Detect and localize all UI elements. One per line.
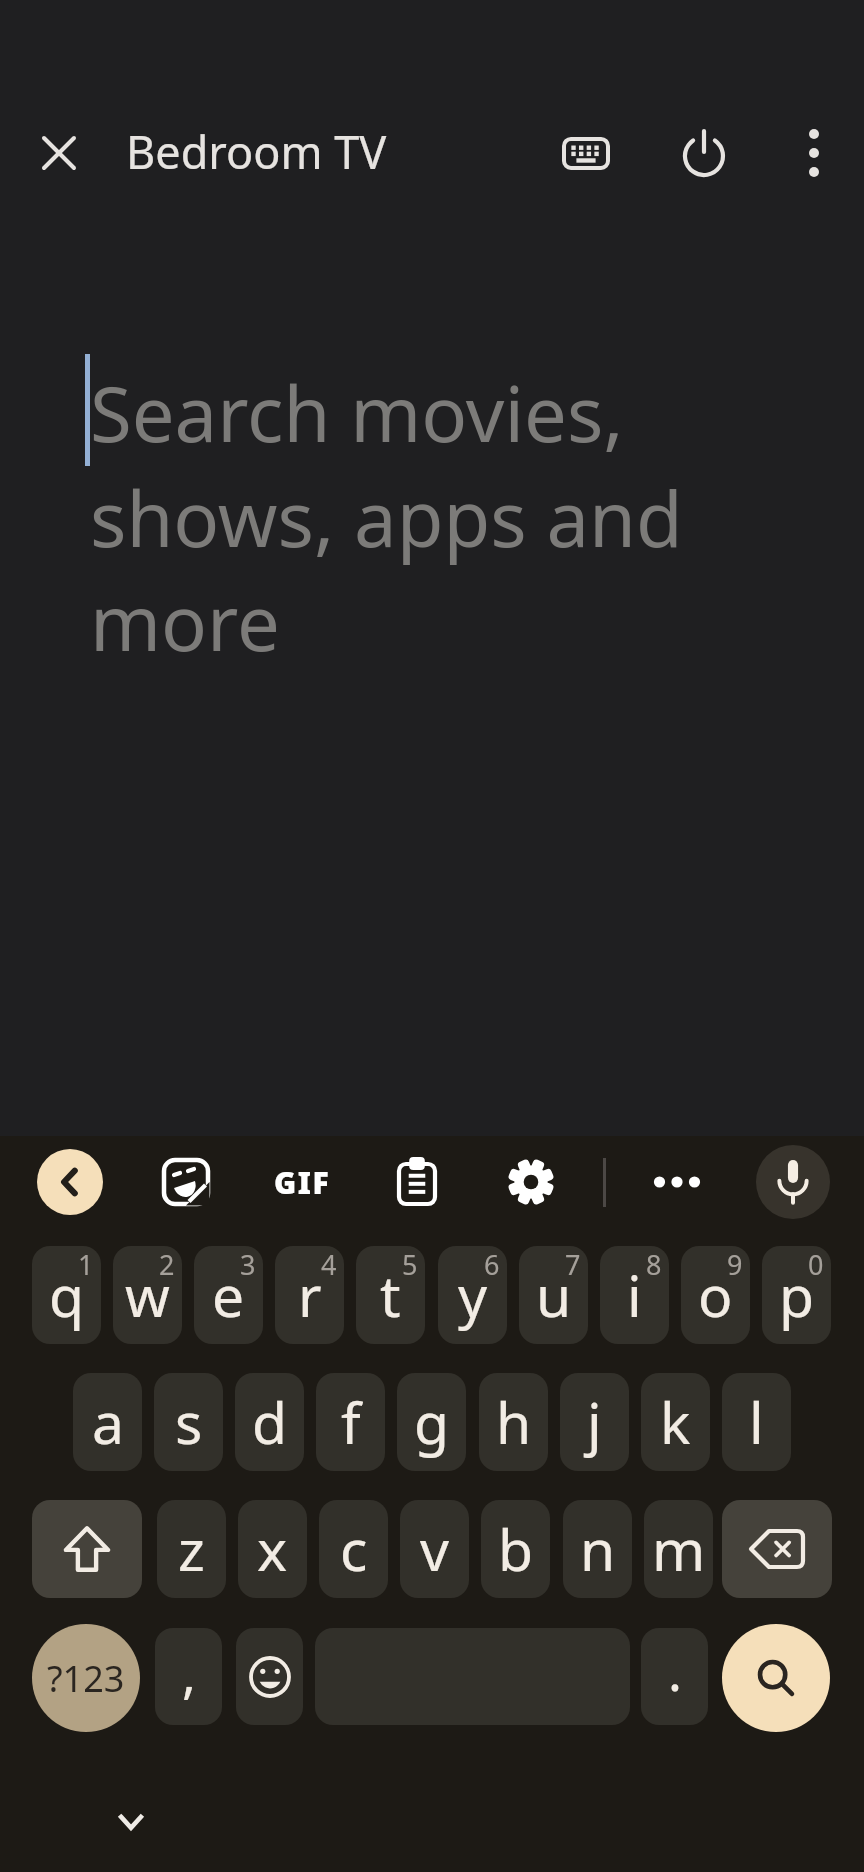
staticText: g: [414, 1383, 450, 1461]
button[interactable]: [394, 1156, 440, 1208]
staticText: w: [125, 1256, 170, 1334]
button[interactable]: e: [194, 1246, 263, 1344]
staticText: v: [420, 1510, 449, 1588]
button[interactable]: [161, 1157, 211, 1207]
staticText: s: [175, 1383, 203, 1461]
staticText: z: [178, 1510, 205, 1588]
staticText: e: [212, 1256, 245, 1334]
button[interactable]: [32, 1500, 142, 1598]
staticText: r: [298, 1256, 322, 1334]
button[interactable]: [40, 134, 78, 172]
staticText: 1: [78, 1246, 94, 1283]
staticText: 3: [240, 1246, 256, 1283]
staticText: 9: [727, 1246, 743, 1283]
button[interactable]: a: [73, 1373, 142, 1471]
staticText: b: [498, 1510, 534, 1588]
staticText: a: [92, 1383, 124, 1461]
staticText: GIF: [274, 1162, 331, 1203]
staticText: f: [341, 1383, 361, 1461]
staticText: j: [587, 1383, 602, 1461]
button[interactable]: n: [563, 1500, 632, 1598]
button[interactable]: j: [560, 1373, 629, 1471]
staticText: y: [458, 1256, 488, 1334]
staticText: h: [496, 1383, 532, 1461]
button[interactable]: .: [641, 1628, 708, 1725]
button[interactable]: GIF: [260, 1158, 344, 1206]
staticText: ,: [182, 1637, 196, 1708]
button[interactable]: g: [397, 1373, 466, 1471]
button[interactable]: p: [762, 1246, 831, 1344]
staticText: ?123: [47, 1654, 125, 1703]
staticText: k: [660, 1383, 691, 1461]
button[interactable]: y: [438, 1246, 507, 1344]
button[interactable]: v: [400, 1500, 469, 1598]
button[interactable]: s: [154, 1373, 223, 1471]
button[interactable]: [648, 1162, 706, 1202]
button[interactable]: f: [316, 1373, 385, 1471]
staticText: i: [627, 1256, 642, 1334]
staticText: n: [580, 1510, 616, 1588]
button[interactable]: z: [157, 1500, 226, 1598]
staticText: Search movies, shows, apps and more: [90, 361, 683, 673]
staticText: x: [257, 1510, 288, 1588]
staticText: 5: [402, 1246, 418, 1283]
button[interactable]: r: [275, 1246, 344, 1344]
staticText: l: [749, 1383, 764, 1461]
button[interactable]: [507, 1158, 555, 1206]
button[interactable]: o: [681, 1246, 750, 1344]
staticText: u: [536, 1256, 572, 1334]
button[interactable]: [37, 1149, 103, 1215]
button[interactable]: b: [481, 1500, 550, 1598]
button[interactable]: [795, 129, 833, 177]
button[interactable]: [722, 1624, 830, 1732]
staticText: 4: [321, 1246, 337, 1283]
staticText: .: [668, 1635, 682, 1706]
button[interactable]: l: [722, 1373, 791, 1471]
staticText: 6: [484, 1246, 500, 1283]
button[interactable]: x: [238, 1500, 307, 1598]
staticText: 2: [159, 1246, 175, 1283]
staticText: 0: [808, 1246, 824, 1283]
staticText: d: [252, 1383, 288, 1461]
staticText: t: [380, 1256, 401, 1334]
staticText: 7: [565, 1246, 581, 1283]
button[interactable]: u: [519, 1246, 588, 1344]
button[interactable]: [112, 1806, 150, 1838]
button[interactable]: [562, 131, 610, 175]
button[interactable]: w: [113, 1246, 182, 1344]
button[interactable]: h: [479, 1373, 548, 1471]
staticText: m: [652, 1510, 706, 1588]
button[interactable]: d: [235, 1373, 304, 1471]
button[interactable]: [236, 1628, 303, 1725]
staticText: 8: [646, 1246, 662, 1283]
button[interactable]: k: [641, 1373, 710, 1471]
button[interactable]: i: [600, 1246, 669, 1344]
button[interactable]: [756, 1145, 830, 1219]
button[interactable]: q: [32, 1246, 101, 1344]
staticText: p: [779, 1256, 815, 1334]
button[interactable]: ?123: [32, 1624, 140, 1732]
staticText: q: [49, 1256, 85, 1334]
staticText: o: [698, 1256, 733, 1334]
button[interactable]: [680, 129, 728, 177]
button[interactable]: [722, 1500, 832, 1598]
button[interactable]: t: [356, 1246, 425, 1344]
staticText: Bedroom TV: [126, 121, 387, 177]
button[interactable]: c: [319, 1500, 388, 1598]
staticText: c: [340, 1510, 368, 1588]
button[interactable]: m: [644, 1500, 713, 1598]
button[interactable]: ,: [155, 1628, 222, 1725]
